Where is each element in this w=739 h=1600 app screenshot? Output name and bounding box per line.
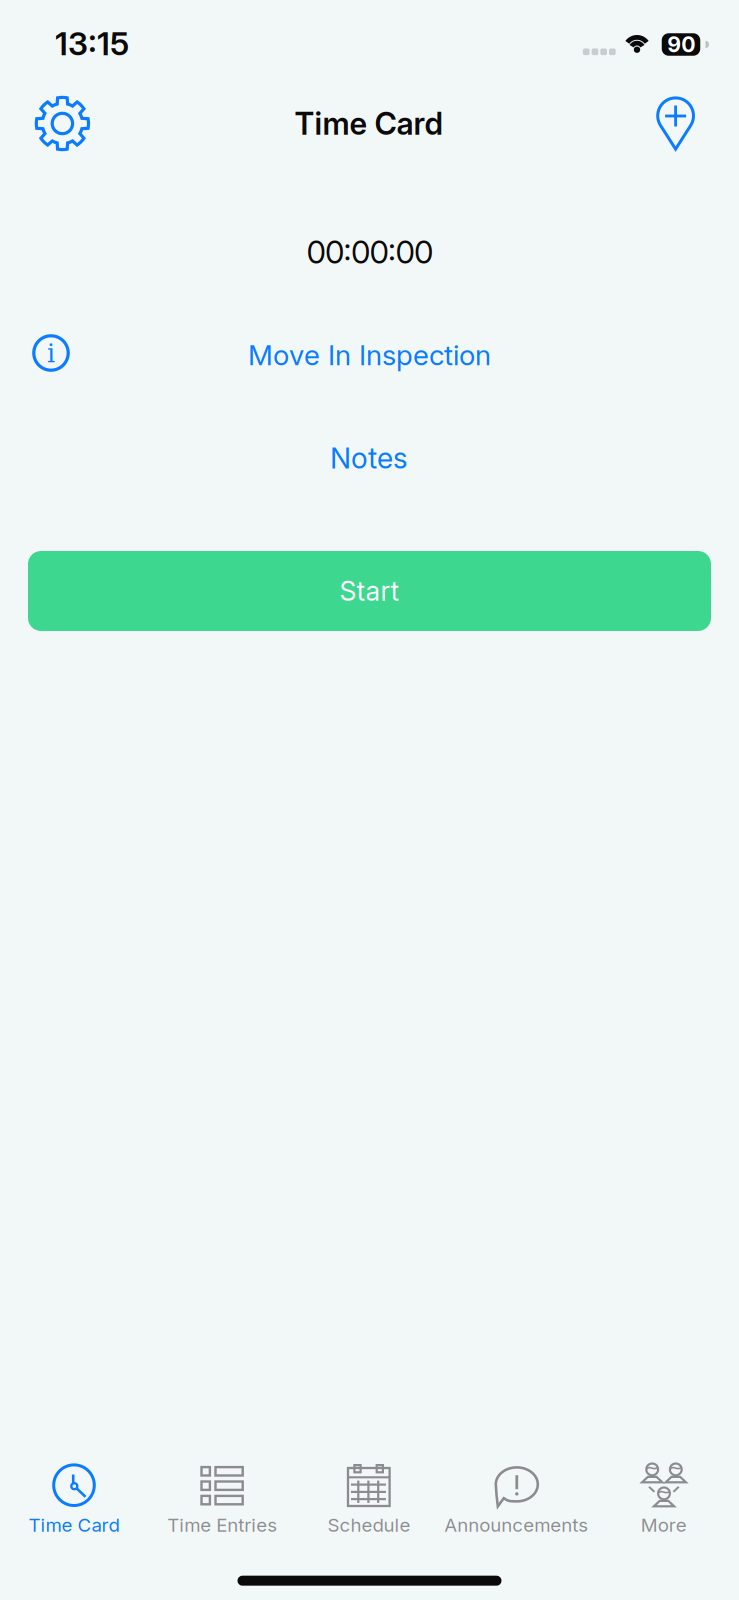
button[interactable]: Time Card <box>0 1447 148 1547</box>
staticText: 90 <box>667 32 695 57</box>
staticText: Start <box>339 575 399 607</box>
button[interactable]: More <box>590 1447 738 1547</box>
staticText: Time Card <box>28 1514 119 1536</box>
button[interactable]: Settings <box>33 94 91 152</box>
staticText: Time Card <box>294 105 443 142</box>
staticText: 13:15 <box>55 24 129 63</box>
staticText: Notes <box>330 441 408 475</box>
staticText: 00:00:00 <box>307 233 433 271</box>
button[interactable]: Start <box>28 551 711 631</box>
staticText: i <box>47 339 55 368</box>
staticText: Move In Inspection <box>248 338 491 372</box>
button[interactable]: Schedule <box>295 1447 443 1547</box>
button[interactable]: Notes <box>330 441 408 475</box>
staticText: More <box>641 1514 687 1536</box>
button[interactable]: Time Entries <box>148 1447 296 1547</box>
button[interactable]: Announcements <box>442 1447 590 1547</box>
button[interactable]: Move In Inspection <box>248 338 491 372</box>
staticText: Schedule <box>327 1514 410 1536</box>
button[interactable]: Info <box>32 334 70 372</box>
staticText: Time Entries <box>167 1514 277 1536</box>
staticText: Announcements <box>444 1514 588 1536</box>
button[interactable]: Add location <box>656 95 696 151</box>
